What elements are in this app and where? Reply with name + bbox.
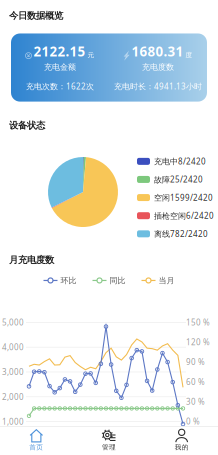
staticText: 充电度数: [142, 62, 174, 72]
button[interactable]: 管理: [73, 426, 145, 454]
staticText: 当月: [158, 275, 174, 285]
staticText: 今日数据概览: [9, 10, 63, 21]
staticText: 150 %: [186, 317, 210, 328]
staticText: 元: [87, 51, 94, 59]
staticText: 4,000: [2, 342, 24, 352]
staticText: 3,000: [2, 367, 24, 377]
staticText: 空闲1599/2420: [154, 192, 213, 203]
staticText: 2122.15: [33, 42, 85, 60]
staticText: 同比: [109, 275, 125, 285]
button[interactable]: 首页: [0, 426, 73, 454]
staticText: 月充电度数: [9, 254, 54, 266]
staticText: 我的: [175, 443, 189, 451]
staticText: 0 %: [186, 416, 200, 427]
staticText: 管理: [102, 443, 116, 451]
staticText: 1680.31: [131, 42, 183, 60]
staticText: 1,000: [2, 416, 24, 427]
staticText: 环比: [60, 275, 76, 285]
staticText: 插枪空闲6/2420: [154, 210, 214, 221]
staticText: 2,000: [2, 391, 24, 402]
staticText: 90 %: [186, 357, 205, 367]
staticText: 充电金额: [44, 62, 76, 72]
staticText: 故障25/2420: [154, 174, 203, 185]
staticText: 度: [185, 51, 192, 59]
staticText: 离线782/2420: [154, 228, 208, 239]
staticText: 30 %: [186, 396, 205, 407]
staticText: 充电中8/2420: [154, 156, 206, 167]
staticText: 5,000: [2, 317, 24, 328]
staticText: 首页: [29, 443, 43, 451]
staticText: 设备状态: [9, 120, 45, 131]
staticText: 充电时长：4941.13小时: [114, 81, 202, 92]
button[interactable]: 我的: [145, 426, 218, 454]
staticText: 60 %: [186, 376, 205, 387]
staticText: 充电次数：1622次: [26, 81, 94, 92]
staticText: 120 %: [186, 337, 210, 347]
